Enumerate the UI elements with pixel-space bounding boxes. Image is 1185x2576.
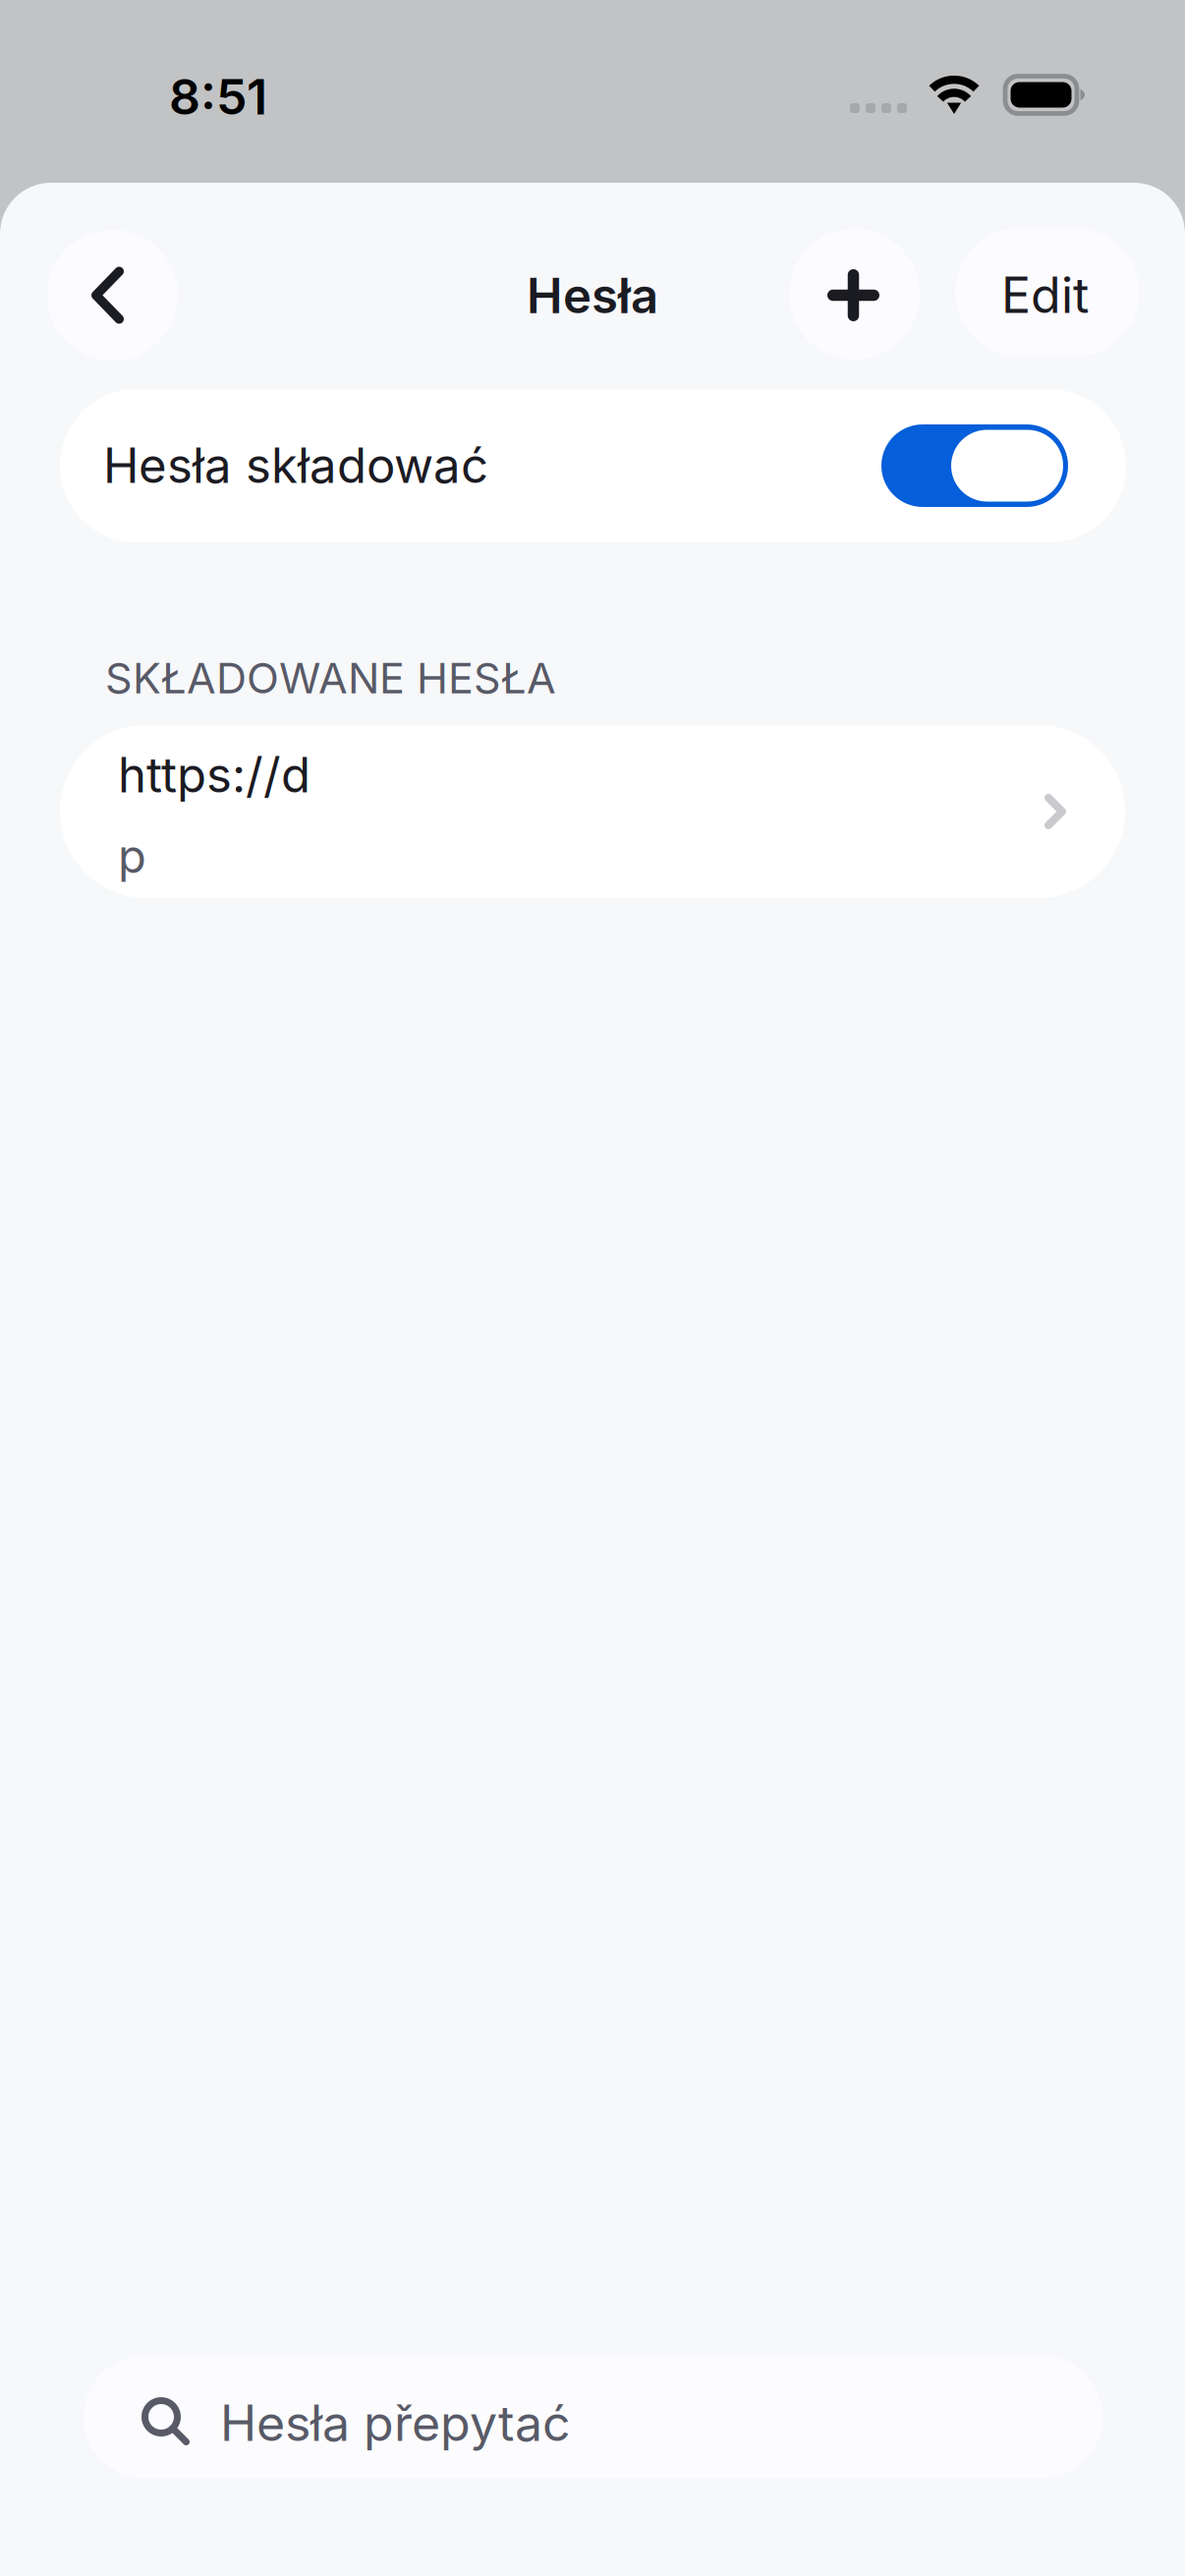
staticText: https://d <box>118 746 310 804</box>
button[interactable]: Hesła přepytać <box>84 2356 1102 2478</box>
staticText: Hesła přepytać <box>220 2393 571 2453</box>
staticText: Hesła <box>527 267 658 325</box>
button[interactable]: Hesła składować <box>60 389 1126 542</box>
button[interactable]: Add password <box>789 229 920 360</box>
staticText: SKŁADOWANE HESŁA <box>105 652 556 703</box>
staticText: Edit <box>1001 265 1089 325</box>
staticText: 8:51 <box>169 67 267 126</box>
staticText: p <box>118 828 146 884</box>
button[interactable]: Back <box>47 230 178 361</box>
button[interactable]: https://d <box>60 725 1125 898</box>
staticText: Hesła składować <box>103 436 488 494</box>
button[interactable]: Edit <box>955 228 1139 357</box>
